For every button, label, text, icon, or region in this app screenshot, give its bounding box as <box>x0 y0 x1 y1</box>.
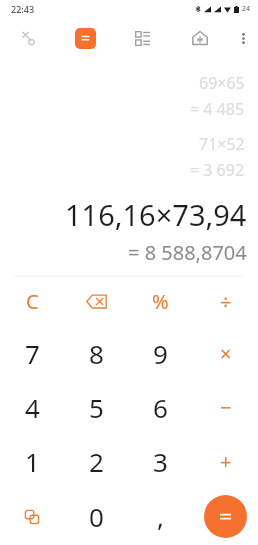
staticText: 0 <box>89 499 104 534</box>
staticText: , <box>157 499 164 534</box>
staticText: 116,16×73,94 <box>65 195 247 234</box>
button[interactable]: 8 <box>64 326 128 380</box>
button[interactable]: Calculator <box>57 17 114 59</box>
staticText: C <box>26 288 39 315</box>
button[interactable]: ÷ <box>193 277 258 326</box>
button[interactable]: 0 <box>64 488 128 545</box>
staticText: ÷ <box>220 288 232 315</box>
button[interactable]: Converter <box>114 17 171 59</box>
staticText: % <box>152 288 169 315</box>
button[interactable]: × <box>193 326 258 380</box>
button[interactable]: 6 <box>128 380 193 434</box>
button[interactable]: Backspace <box>64 277 128 326</box>
staticText: 3 <box>153 444 168 479</box>
button[interactable]: Mortgage calculator <box>171 17 228 59</box>
staticText: = 8 588,8704 <box>128 239 247 266</box>
staticText: 7 <box>25 336 40 371</box>
staticText: 5 <box>89 390 104 425</box>
staticText: + <box>220 448 232 475</box>
button[interactable]: Equals <box>204 495 247 538</box>
staticText: 9 <box>153 336 168 371</box>
button[interactable]: Scientific mode <box>0 17 57 59</box>
staticText: 1 <box>25 444 40 479</box>
button[interactable]: , <box>128 488 193 545</box>
button[interactable]: More options <box>228 17 258 59</box>
staticText: = 4 485 <box>190 98 245 120</box>
staticText: 71×52 <box>199 133 245 155</box>
staticText: 8 <box>89 336 104 371</box>
staticText: 4 <box>25 390 40 425</box>
staticText: − <box>220 394 232 421</box>
button[interactable]: 3 <box>128 434 193 488</box>
staticText: 2 <box>89 444 104 479</box>
button[interactable]: 2 <box>64 434 128 488</box>
button[interactable]: Copy result <box>0 488 64 545</box>
button[interactable]: 9 <box>128 326 193 380</box>
staticText: = 3 692 <box>190 159 245 181</box>
staticText: 24 <box>242 4 251 14</box>
button[interactable]: 4 <box>0 380 64 434</box>
button[interactable]: C <box>0 277 64 326</box>
staticText: 6 <box>153 390 168 425</box>
button[interactable]: − <box>193 380 258 434</box>
staticText: × <box>220 340 232 367</box>
staticText: 22:43 <box>11 3 35 15</box>
button[interactable]: 7 <box>0 326 64 380</box>
button[interactable]: % <box>128 277 193 326</box>
staticText: 69×65 <box>199 72 245 94</box>
button[interactable]: 5 <box>64 380 128 434</box>
button[interactable]: + <box>193 434 258 488</box>
button[interactable]: 1 <box>0 434 64 488</box>
